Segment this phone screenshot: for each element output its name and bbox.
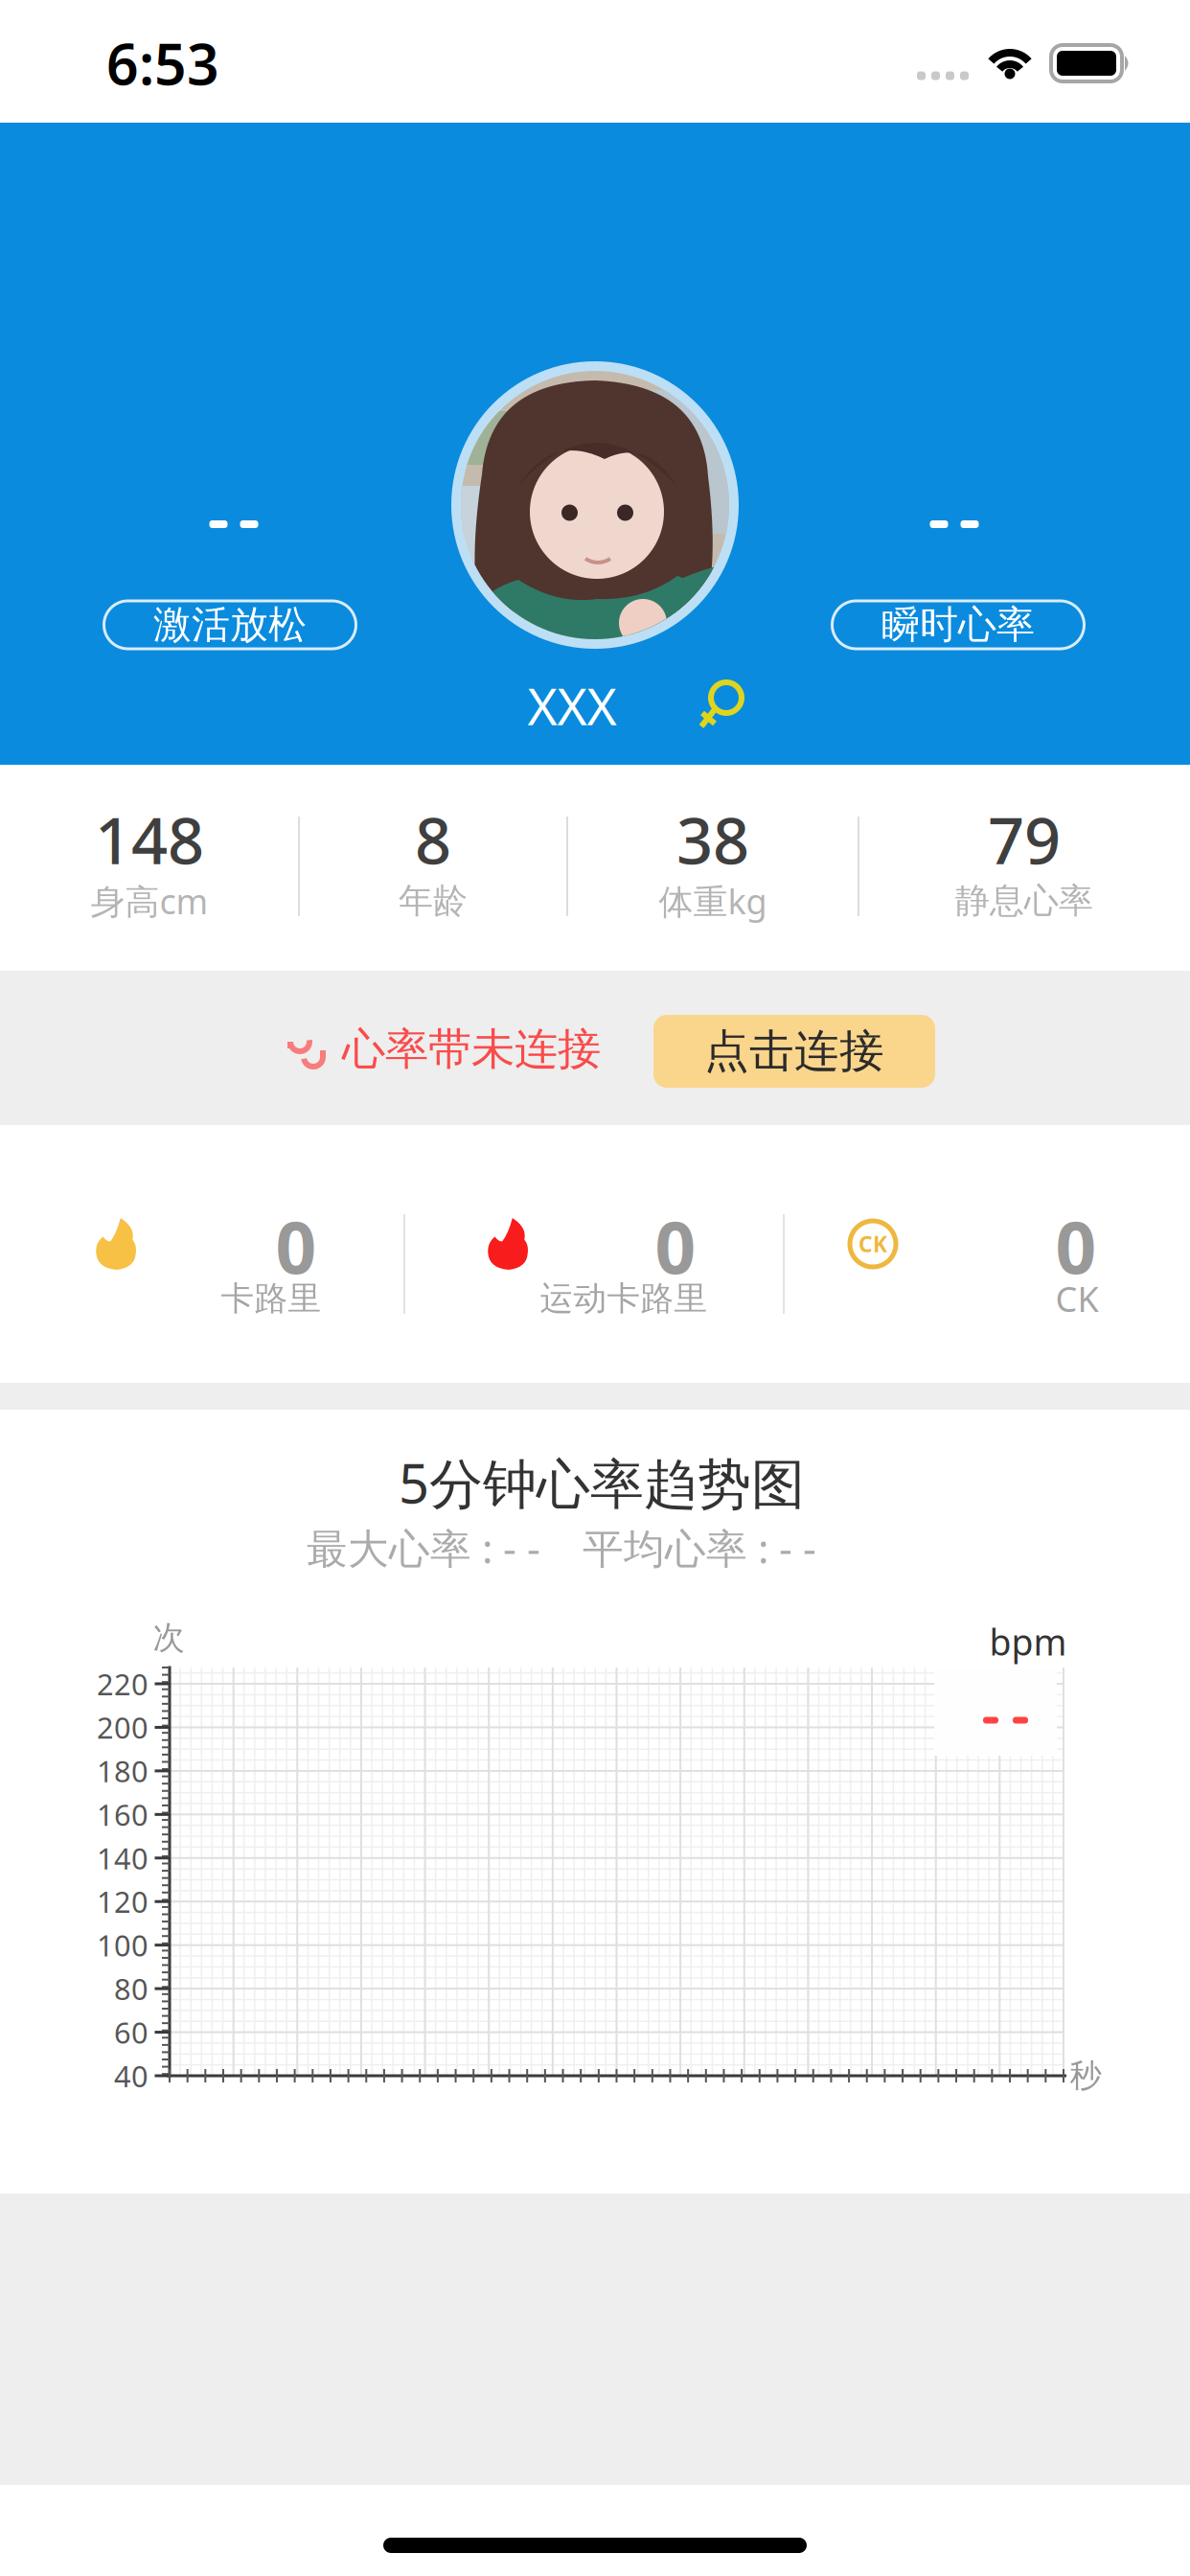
staticText: 200 — [97, 1708, 149, 1747]
staticText: 年龄 — [399, 880, 468, 922]
staticText: 点击连接 — [704, 1024, 884, 1079]
staticText: 80 — [114, 1969, 149, 2008]
staticText: 激活放松 — [153, 601, 307, 648]
staticText: CK — [1055, 1276, 1098, 1321]
staticText: 120 — [97, 1882, 149, 1921]
staticText: 38 — [676, 797, 749, 882]
staticText: 60 — [114, 2013, 149, 2052]
staticText: CK — [858, 1229, 887, 1258]
staticText: 体重kg — [659, 878, 767, 924]
staticText: 79 — [988, 797, 1061, 882]
staticText: 100 — [97, 1926, 149, 1965]
staticText: 0 — [1055, 1198, 1097, 1293]
staticText: 最大心率 : - - 平均心率 : - - — [307, 1521, 816, 1575]
staticText: 0 — [275, 1198, 317, 1293]
staticText: 6:53 — [106, 26, 219, 101]
staticText: XXX — [527, 671, 617, 739]
staticText: 次 — [153, 1618, 184, 1657]
staticText: bpm — [989, 1618, 1067, 1665]
staticText: 静息心率 — [955, 880, 1093, 922]
staticText: 160 — [97, 1795, 149, 1834]
staticText: 瞬时心率 — [881, 601, 1035, 648]
staticText: 40 — [114, 2056, 149, 2095]
staticText: 148 — [95, 797, 204, 882]
staticText: 运动卡路里 — [540, 1278, 708, 1319]
staticText: 身高cm — [91, 878, 208, 924]
staticText: 秒 — [1070, 2056, 1101, 2095]
staticText: 卡路里 — [221, 1278, 321, 1319]
staticText: 220 — [97, 1664, 149, 1703]
staticText: 5分钟心率趋势图 — [399, 1447, 805, 1518]
button[interactable]: 点击连接 — [653, 1015, 935, 1088]
staticText: 8 — [415, 797, 451, 882]
staticText: 180 — [97, 1751, 149, 1790]
staticText: 心率带未连接 — [342, 1023, 601, 1076]
staticText: 140 — [97, 1838, 149, 1877]
button[interactable]: 激活放松 — [104, 601, 356, 649]
button[interactable]: 瞬时心率 — [832, 601, 1084, 649]
staticText: 0 — [655, 1198, 696, 1293]
